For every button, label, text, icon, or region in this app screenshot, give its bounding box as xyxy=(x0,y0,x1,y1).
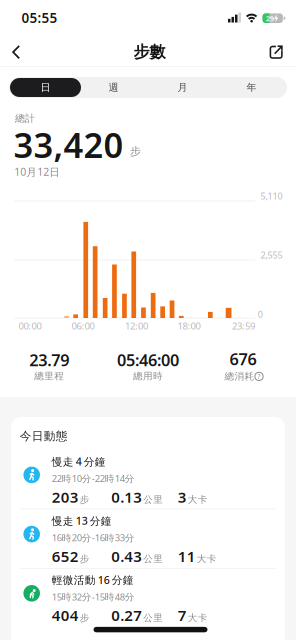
staticText: 7 xyxy=(178,605,187,625)
staticText: 10月12日 xyxy=(14,165,60,179)
staticText: 203 xyxy=(52,487,79,507)
staticText: 23.79 xyxy=(29,349,69,371)
staticText: 23:59 xyxy=(232,319,255,332)
staticText: 3 xyxy=(178,487,187,507)
button[interactable]: 年 xyxy=(217,77,286,98)
staticText: 年 xyxy=(246,81,256,94)
staticText: 0.13 xyxy=(111,487,142,507)
staticText: 慢走 13 分鐘 xyxy=(52,513,112,528)
button[interactable]: Help xyxy=(254,371,264,381)
staticText: 18:00 xyxy=(177,319,200,332)
button[interactable]: 慢走 13 分鐘 xyxy=(11,509,285,568)
staticText: 月 xyxy=(177,81,187,94)
button[interactable]: Back xyxy=(5,43,27,62)
staticText: 05:55 xyxy=(21,9,57,27)
staticText: 總消耗 xyxy=(224,370,254,382)
staticText: 步 xyxy=(80,612,90,624)
staticText: 慢走 4 分鐘 xyxy=(52,454,106,469)
button[interactable]: 月 xyxy=(148,77,217,98)
staticText: 公里 xyxy=(143,494,163,506)
staticText: 步 xyxy=(80,553,90,565)
staticText: 00:00 xyxy=(18,319,41,332)
staticText: 總用時 xyxy=(133,370,163,382)
staticText: 12:00 xyxy=(125,319,148,332)
staticText: 2,555 xyxy=(260,249,282,261)
staticText: 步 xyxy=(80,494,90,506)
staticText: 輕微活動 16 分鐘 xyxy=(52,573,134,587)
staticText: 今日動態 xyxy=(20,429,68,443)
staticText: 16時20分-16時33分 xyxy=(52,531,135,544)
staticText: 總計 xyxy=(15,112,35,125)
staticText: 15時32分-15時48分 xyxy=(52,590,135,603)
staticText: 公里 xyxy=(143,612,163,624)
staticText: 29 xyxy=(266,13,274,23)
button[interactable]: 輕微活動 16 分鐘 xyxy=(11,568,285,627)
staticText: 5,110 xyxy=(260,190,282,202)
staticText: 總里程 xyxy=(34,370,64,382)
staticText: 33,420 xyxy=(13,121,123,168)
staticText: 11 xyxy=(178,546,196,566)
staticText: ? xyxy=(257,372,260,381)
staticText: 0.43 xyxy=(111,546,142,566)
staticText: 大卡 xyxy=(188,612,208,624)
staticText: 公里 xyxy=(143,553,163,565)
staticText: 步數 xyxy=(133,42,165,62)
staticText: 06:00 xyxy=(71,319,94,332)
staticText: 步 xyxy=(130,144,141,158)
button[interactable]: Share xyxy=(266,43,288,63)
staticText: 404 xyxy=(52,605,79,625)
staticText: 大卡 xyxy=(197,553,217,565)
staticText: 週 xyxy=(108,81,118,94)
staticText: 676 xyxy=(229,348,256,370)
button[interactable]: 慢走 4 分鐘 xyxy=(11,450,285,509)
staticText: 0.27 xyxy=(111,605,142,625)
button[interactable]: 週 xyxy=(79,77,148,98)
staticText: 652 xyxy=(52,546,79,566)
staticText: 05:46:00 xyxy=(117,349,179,371)
staticText: 大卡 xyxy=(188,494,208,506)
button[interactable]: 日 xyxy=(10,77,81,98)
staticText: 日 xyxy=(40,81,50,94)
staticText: 22時10分-22時14分 xyxy=(52,472,135,485)
staticText: 0 xyxy=(258,308,263,320)
